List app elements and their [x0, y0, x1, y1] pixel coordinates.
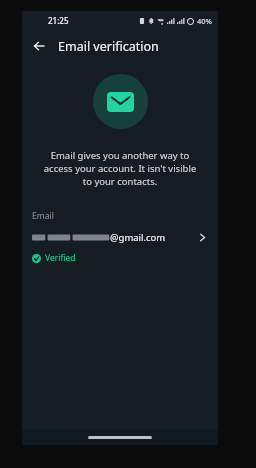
staticText: Email gives you another way to access yo… — [40, 149, 200, 188]
staticText: Email verification — [58, 38, 159, 55]
button[interactable]: Back — [26, 33, 52, 59]
staticText: Email — [32, 210, 54, 222]
button[interactable]: @gmail.com — [32, 229, 208, 246]
staticText: @gmail.com — [110, 231, 166, 244]
staticText: 40% — [197, 16, 212, 26]
staticText: Verified — [45, 252, 76, 264]
staticText: 21:25 — [48, 15, 69, 26]
